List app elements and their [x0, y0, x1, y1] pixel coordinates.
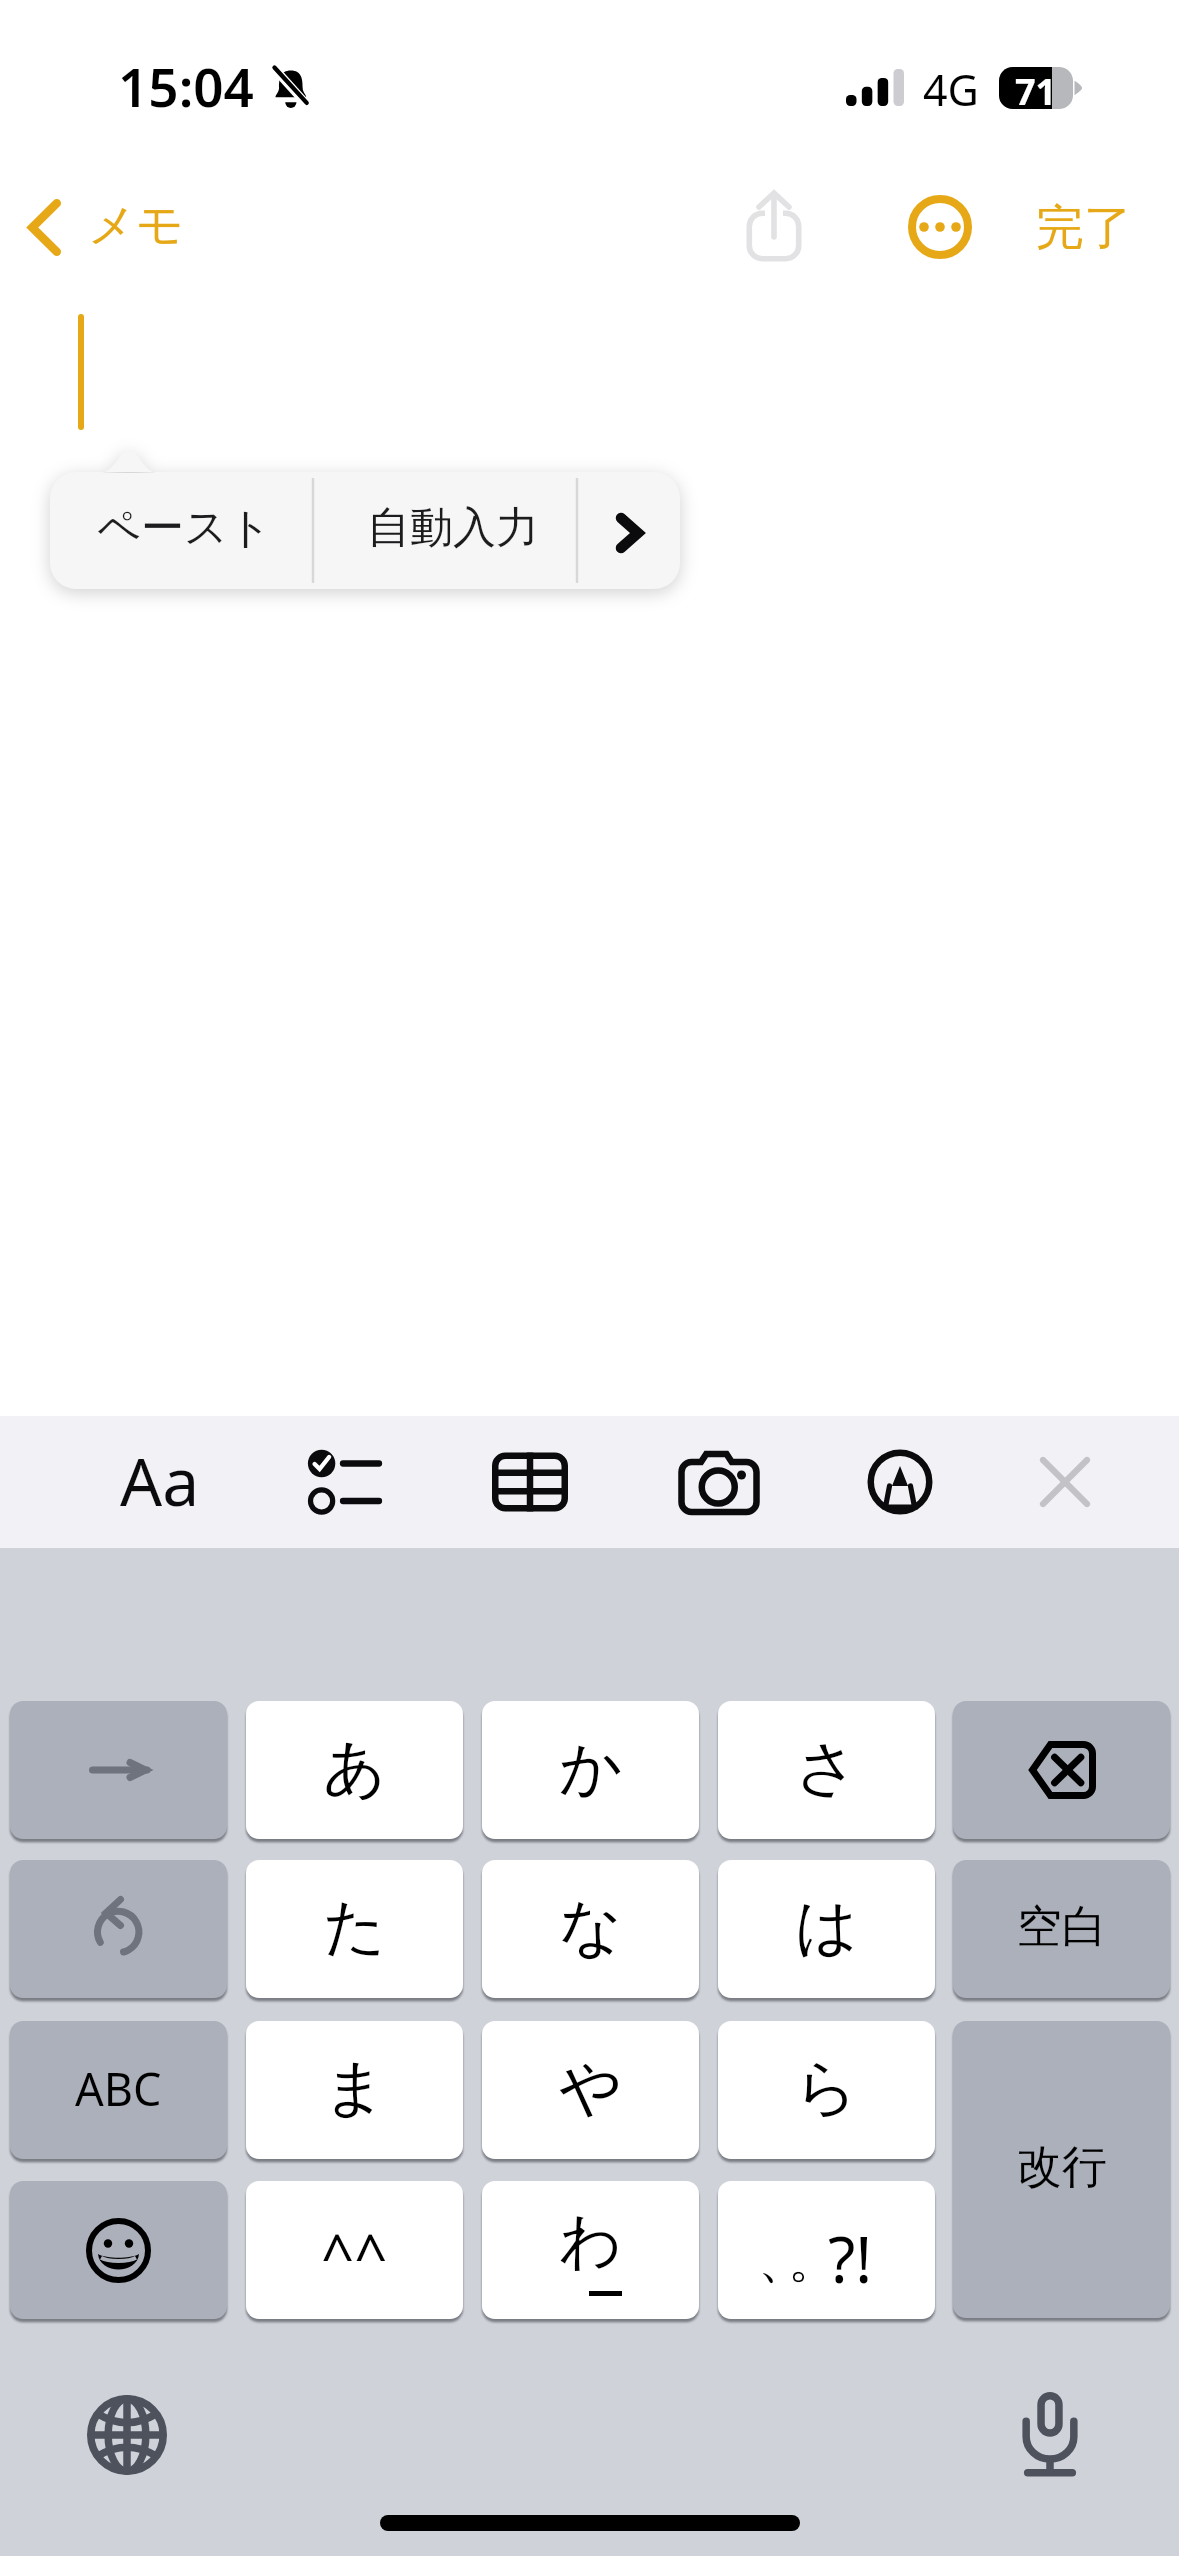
- button[interactable]: ABC: [10, 2021, 227, 2159]
- button[interactable]: ま: [246, 2021, 463, 2159]
- staticText: 4G: [923, 60, 979, 119]
- staticText: さ: [795, 1729, 859, 1807]
- button[interactable]: [10, 1701, 227, 1839]
- staticText: は: [795, 1888, 859, 1966]
- button[interactable]: さ: [718, 1701, 935, 1839]
- button[interactable]: Table: [470, 1437, 590, 1527]
- button[interactable]: Dictate: [1000, 2378, 1100, 2478]
- button[interactable]: ^^: [246, 2181, 463, 2319]
- button[interactable]: や: [482, 2021, 699, 2159]
- button[interactable]: た: [246, 1860, 463, 1998]
- staticText: ペースト: [97, 501, 273, 555]
- staticText: 、: [758, 2229, 808, 2292]
- staticText: 15:04: [118, 50, 254, 122]
- staticText: 空白: [1017, 1899, 1107, 1956]
- button[interactable]: More options: [893, 180, 987, 274]
- staticText: メモ: [88, 196, 185, 255]
- button[interactable]: Share: [729, 170, 819, 284]
- button[interactable]: あ: [246, 1701, 463, 1839]
- button[interactable]: 改行: [953, 2021, 1170, 2318]
- button[interactable]: Camera: [659, 1436, 779, 1526]
- staticText: 自動入力: [367, 501, 539, 555]
- button[interactable]: か: [482, 1701, 699, 1839]
- button[interactable]: は: [718, 1860, 935, 1998]
- staticText: や: [559, 2049, 623, 2127]
- button[interactable]: Checklist: [285, 1440, 405, 1530]
- button[interactable]: 空白: [953, 1860, 1170, 1998]
- button[interactable]: 、: [718, 2181, 935, 2319]
- button[interactable]: ら: [718, 2021, 935, 2159]
- staticText: あ: [323, 1729, 387, 1807]
- staticText: ^^: [321, 2215, 388, 2294]
- button[interactable]: Switch keyboard: [87, 2395, 167, 2475]
- button[interactable]: 完了: [1030, 192, 1138, 268]
- staticText: ま: [323, 2049, 387, 2127]
- staticText: 改行: [1017, 2139, 1107, 2196]
- button[interactable]: な: [482, 1860, 699, 1998]
- button[interactable]: [10, 2181, 227, 2319]
- button[interactable]: わ: [482, 2181, 699, 2319]
- button[interactable]: Close keyboard: [1020, 1437, 1110, 1527]
- staticText: な: [559, 1888, 623, 1966]
- staticText: わ: [559, 2202, 623, 2280]
- staticText: 71: [1015, 67, 1057, 116]
- staticText: 。: [788, 2229, 838, 2292]
- button[interactable]: [10, 1860, 227, 1998]
- staticText: た: [323, 1888, 387, 1966]
- button[interactable]: Markup: [840, 1437, 960, 1527]
- staticText: Aa: [120, 1435, 200, 1525]
- button[interactable]: Aa: [96, 1434, 224, 1530]
- staticText: ら: [795, 2049, 859, 2127]
- staticText: ABC: [75, 2058, 162, 2119]
- staticText: か: [559, 1729, 623, 1807]
- staticText: ?!: [828, 2216, 873, 2302]
- button[interactable]: メモ: [22, 186, 191, 269]
- staticText: 完了: [1036, 198, 1132, 258]
- button[interactable]: [953, 1701, 1170, 1839]
